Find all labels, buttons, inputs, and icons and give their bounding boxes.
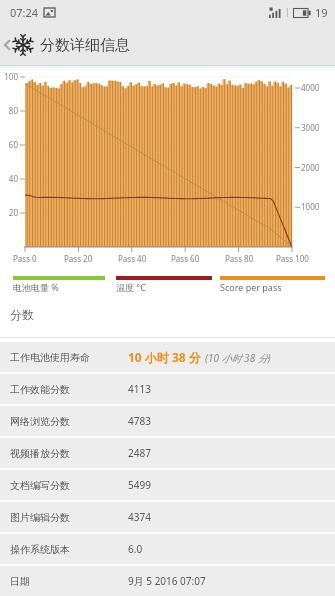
staticText: 20 — [8, 207, 18, 218]
staticText: Pass 100 — [276, 253, 309, 264]
staticText: Pass 60 — [171, 253, 200, 264]
staticText: 分数详细信息 — [40, 36, 130, 55]
staticText: 19 — [315, 5, 328, 20]
staticText: 文档编写分数 — [10, 479, 70, 492]
button[interactable]: 操作系统版本 — [0, 534, 335, 564]
staticText: 2000 — [301, 162, 320, 173]
staticText: 4374 — [128, 510, 151, 524]
staticText: 2487 — [128, 446, 151, 460]
staticText: Pass 40 — [118, 253, 147, 264]
staticText: 操作系统版本 — [10, 543, 70, 556]
button[interactable]: 视频播放分数 — [0, 438, 335, 468]
staticText: 40 — [8, 173, 18, 184]
staticText: 9月 5 2016 07:07 — [128, 574, 206, 588]
staticText: 分数 — [10, 307, 34, 322]
staticText: 4000 — [301, 82, 320, 93]
staticText: 80 — [8, 105, 18, 116]
button[interactable]: 工作效能分数 — [0, 374, 335, 404]
staticText: 60 — [8, 139, 18, 150]
staticText: 4113 — [128, 382, 151, 396]
staticText: Score per pass — [220, 281, 282, 293]
staticText: 1000 — [301, 201, 320, 212]
staticText: 工作电池使用寿命 — [10, 351, 90, 364]
staticText: 日期 — [10, 575, 30, 588]
staticText: 07:24 — [10, 5, 39, 20]
staticText: 4783 — [128, 414, 151, 428]
button[interactable]: 网络浏览分数 — [0, 406, 335, 436]
staticText: 电池电量 % — [13, 281, 59, 293]
staticText: 温度 °C — [116, 281, 146, 293]
staticText: 工作效能分数 — [10, 383, 70, 396]
staticText: 图片编辑分数 — [10, 511, 70, 524]
staticText: 5499 — [128, 478, 151, 492]
staticText: 3000 — [301, 122, 320, 133]
button[interactable]: 工作电池使用寿命 — [0, 342, 335, 372]
staticText: 网络浏览分数 — [10, 415, 70, 428]
button[interactable]: 日期 — [0, 566, 335, 596]
staticText: Pass 80 — [225, 253, 254, 264]
staticText: (10 小时 38 分) — [205, 351, 271, 365]
staticText: 100 — [4, 71, 18, 82]
button[interactable]: Back — [0, 24, 13, 66]
button[interactable]: 图片编辑分数 — [0, 502, 335, 532]
staticText: 视频播放分数 — [10, 447, 70, 460]
button[interactable]: 文档编写分数 — [0, 470, 335, 500]
staticText: 10 小时 38 分 — [128, 349, 201, 365]
staticText: 6.0 — [128, 542, 143, 556]
staticText: Pass 20 — [64, 253, 93, 264]
staticText: Pass 0 — [13, 253, 37, 264]
